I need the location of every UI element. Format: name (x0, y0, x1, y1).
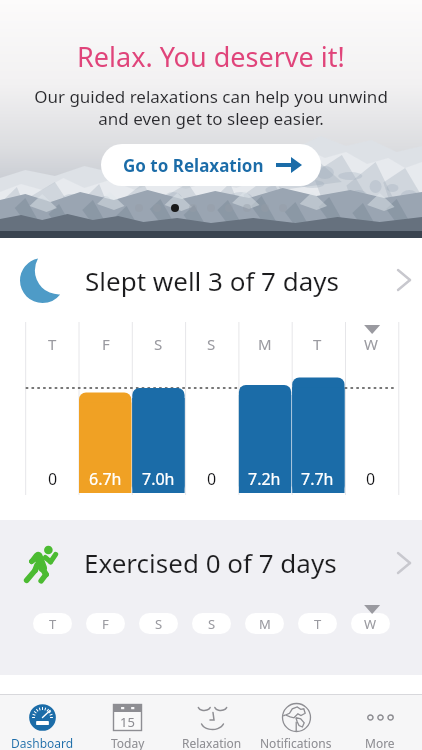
staticText: Relax. You deserve it! (77, 38, 345, 75)
staticText: 7.7h (301, 468, 334, 490)
staticText: 15 (120, 713, 135, 731)
staticText: 7.0h (142, 468, 175, 490)
button[interactable]: Exercised 0 of 7 days (0, 520, 422, 605)
staticText: T (49, 615, 57, 633)
staticText: F (102, 334, 110, 354)
other: Dashboard (28, 703, 57, 732)
staticText: W (364, 334, 378, 354)
other: More (366, 703, 395, 732)
staticText: Today (111, 735, 145, 750)
staticText: M (258, 334, 272, 354)
staticText: S (154, 334, 163, 354)
button[interactable]: Notifications (254, 695, 338, 750)
button[interactable]: Slept well 3 of 7 days (0, 238, 422, 322)
button[interactable]: T (33, 613, 72, 634)
other: Relaxation (198, 703, 227, 732)
staticText: S (207, 334, 216, 354)
staticText: S (208, 615, 216, 633)
staticText: Go to Relaxation (123, 154, 264, 177)
staticText: Dashboard (11, 735, 74, 750)
button[interactable]: S (139, 613, 178, 634)
staticText: T (48, 334, 57, 354)
button[interactable]: More (338, 695, 422, 750)
staticText: Relaxation (182, 735, 242, 750)
staticText: Slept well 3 of 7 days (85, 263, 340, 298)
button[interactable]: F (86, 613, 125, 634)
other: Today (113, 703, 142, 732)
staticText: W (364, 615, 377, 633)
staticText: S (155, 615, 163, 633)
staticText: 0 (48, 468, 58, 490)
button[interactable]: Dashboard (0, 695, 85, 750)
staticText: 0 (366, 468, 376, 490)
staticText: T (314, 615, 322, 633)
button[interactable]: Today (85, 695, 170, 750)
staticText: Exercised 0 of 7 days (84, 545, 337, 580)
staticText: T (313, 334, 322, 354)
staticText: M (259, 615, 271, 633)
staticText: Notifications (260, 735, 332, 750)
staticText: 0 (207, 468, 217, 490)
staticText: More (365, 735, 395, 750)
staticText: Our guided relaxations can help you unwi… (34, 85, 388, 130)
button[interactable]: W (351, 613, 390, 634)
button[interactable]: Relaxation (170, 695, 254, 750)
staticText: 6.7h (89, 468, 122, 490)
button[interactable]: Go to Relaxation (101, 144, 321, 186)
button[interactable]: S (192, 613, 231, 634)
button[interactable]: T (298, 613, 337, 634)
button[interactable]: M (245, 613, 284, 634)
staticText: 7.2h (248, 468, 281, 490)
staticText: F (102, 615, 109, 633)
other: Notifications (282, 703, 311, 732)
